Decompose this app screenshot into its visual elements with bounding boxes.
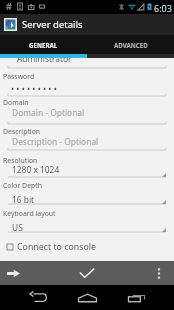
staticText: Resolution (3, 156, 38, 165)
button[interactable]: Next (0, 261, 58, 285)
button[interactable]: Save (58, 261, 116, 285)
staticText: Administrator (17, 58, 72, 64)
staticText: GENERAL (29, 41, 58, 49)
staticText: Domain - Optional (12, 107, 85, 118)
staticText: 16 bit (12, 194, 35, 205)
staticText: • • • • • • • • • (11, 83, 57, 94)
button[interactable]: Back (13, 285, 63, 310)
staticText: 1280 x 1024 (12, 164, 60, 175)
button[interactable]: More options (142, 261, 174, 285)
staticText: Description (3, 127, 41, 136)
button[interactable]: GENERAL (0, 35, 87, 58)
staticText: Connect to console (17, 241, 96, 253)
staticText: Server details (22, 18, 83, 31)
staticText: 6:03 (154, 2, 172, 14)
button[interactable]: ADVANCED (87, 35, 174, 58)
staticText: Keyboard layout (3, 209, 56, 218)
staticText: ADVANCED (114, 41, 148, 49)
staticText: Description - Optional (12, 136, 99, 147)
button[interactable]: Recent apps (111, 285, 161, 310)
staticText: Password (3, 72, 35, 81)
staticText: Domain (3, 98, 29, 107)
button[interactable]: Connect to console (0, 241, 174, 253)
staticText: US (12, 222, 23, 233)
staticText: Color Depth (3, 181, 43, 190)
button[interactable]: Home (62, 285, 112, 310)
button[interactable]: Server details (0, 14, 174, 35)
